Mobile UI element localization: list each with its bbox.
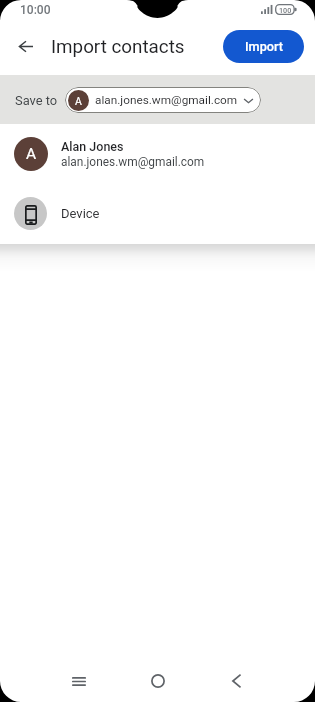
staticText: Save to [15,93,58,108]
button[interactable]: Home [138,661,178,701]
button[interactable]: Import [223,30,304,63]
staticText: Alan Jones [61,139,124,154]
button[interactable]: A [65,87,261,113]
staticText: 100 [279,6,292,14]
staticText: alan.jones.wm@gmail.com [95,93,238,107]
staticText: A [75,95,82,107]
button[interactable]: Recent apps [59,661,99,701]
button[interactable]: A [0,124,315,184]
button[interactable]: Device [0,183,315,243]
staticText: 10:00 [20,3,51,17]
button[interactable]: Back [7,29,42,64]
staticText: Device [61,206,100,221]
staticText: Import [245,39,283,54]
staticText: A [26,145,37,163]
staticText: alan.jones.wm@gmail.com [61,155,205,169]
button[interactable]: Back [216,661,256,701]
staticText: Import contacts [51,36,185,58]
